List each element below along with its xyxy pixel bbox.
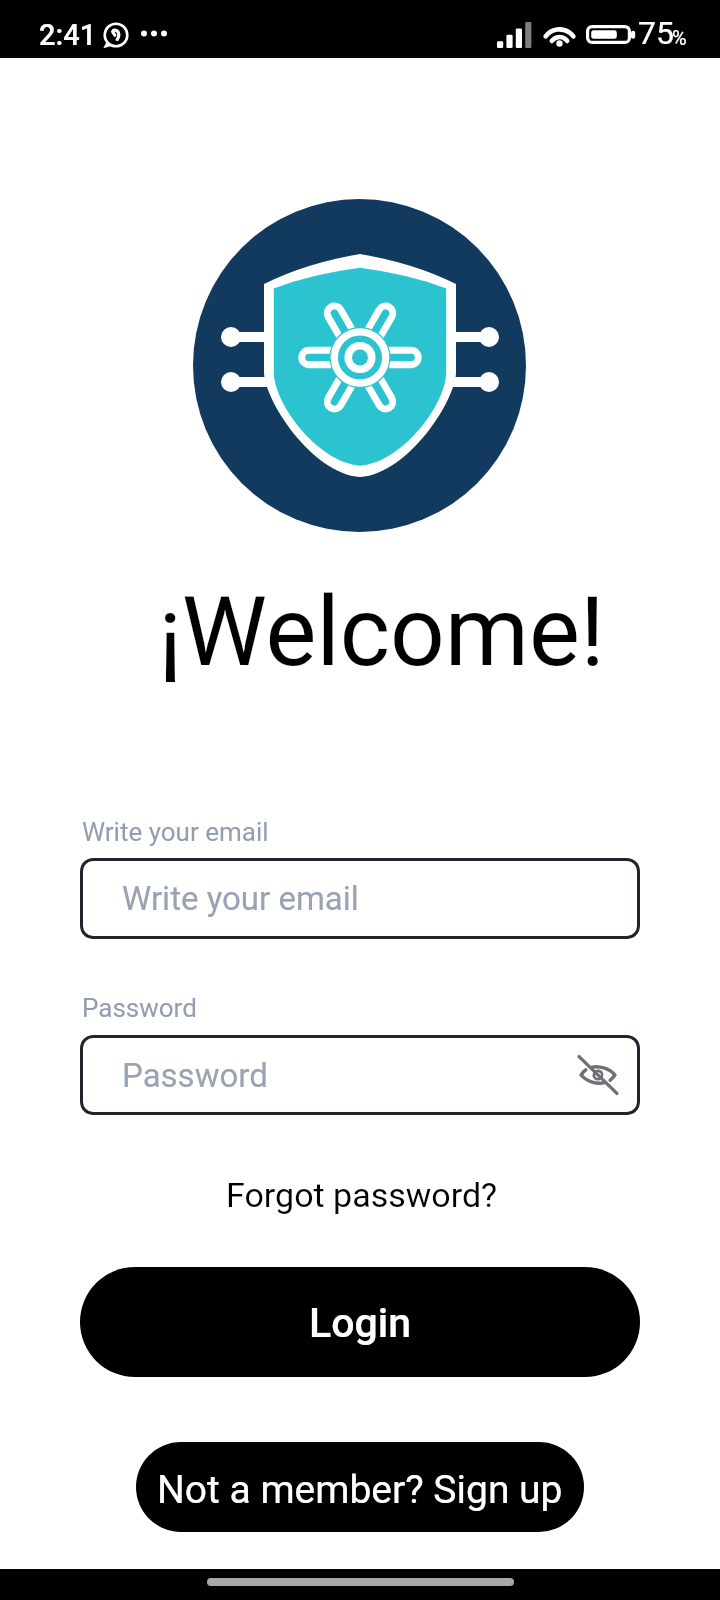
- staticText: Login: [309, 1299, 412, 1347]
- staticText: Not a member? Sign up: [157, 1467, 563, 1513]
- staticText: Write your email: [82, 817, 269, 847]
- button[interactable]: Write your email: [80, 858, 640, 939]
- button[interactable]: Show password: [574, 1051, 622, 1099]
- staticText: 75: [638, 14, 674, 52]
- staticText: Password: [82, 993, 197, 1023]
- button[interactable]: Forgot password?: [216, 1169, 508, 1221]
- staticText: 2:41: [39, 18, 97, 52]
- staticText: %: [672, 26, 687, 49]
- button[interactable]: Login: [80, 1267, 640, 1377]
- button[interactable]: Password: [80, 1035, 640, 1115]
- staticText: Write your email: [122, 879, 359, 918]
- button[interactable]: Not a member? Sign up: [136, 1442, 584, 1532]
- staticText: Password: [122, 1056, 268, 1095]
- staticText: ¡Welcome!: [158, 576, 605, 689]
